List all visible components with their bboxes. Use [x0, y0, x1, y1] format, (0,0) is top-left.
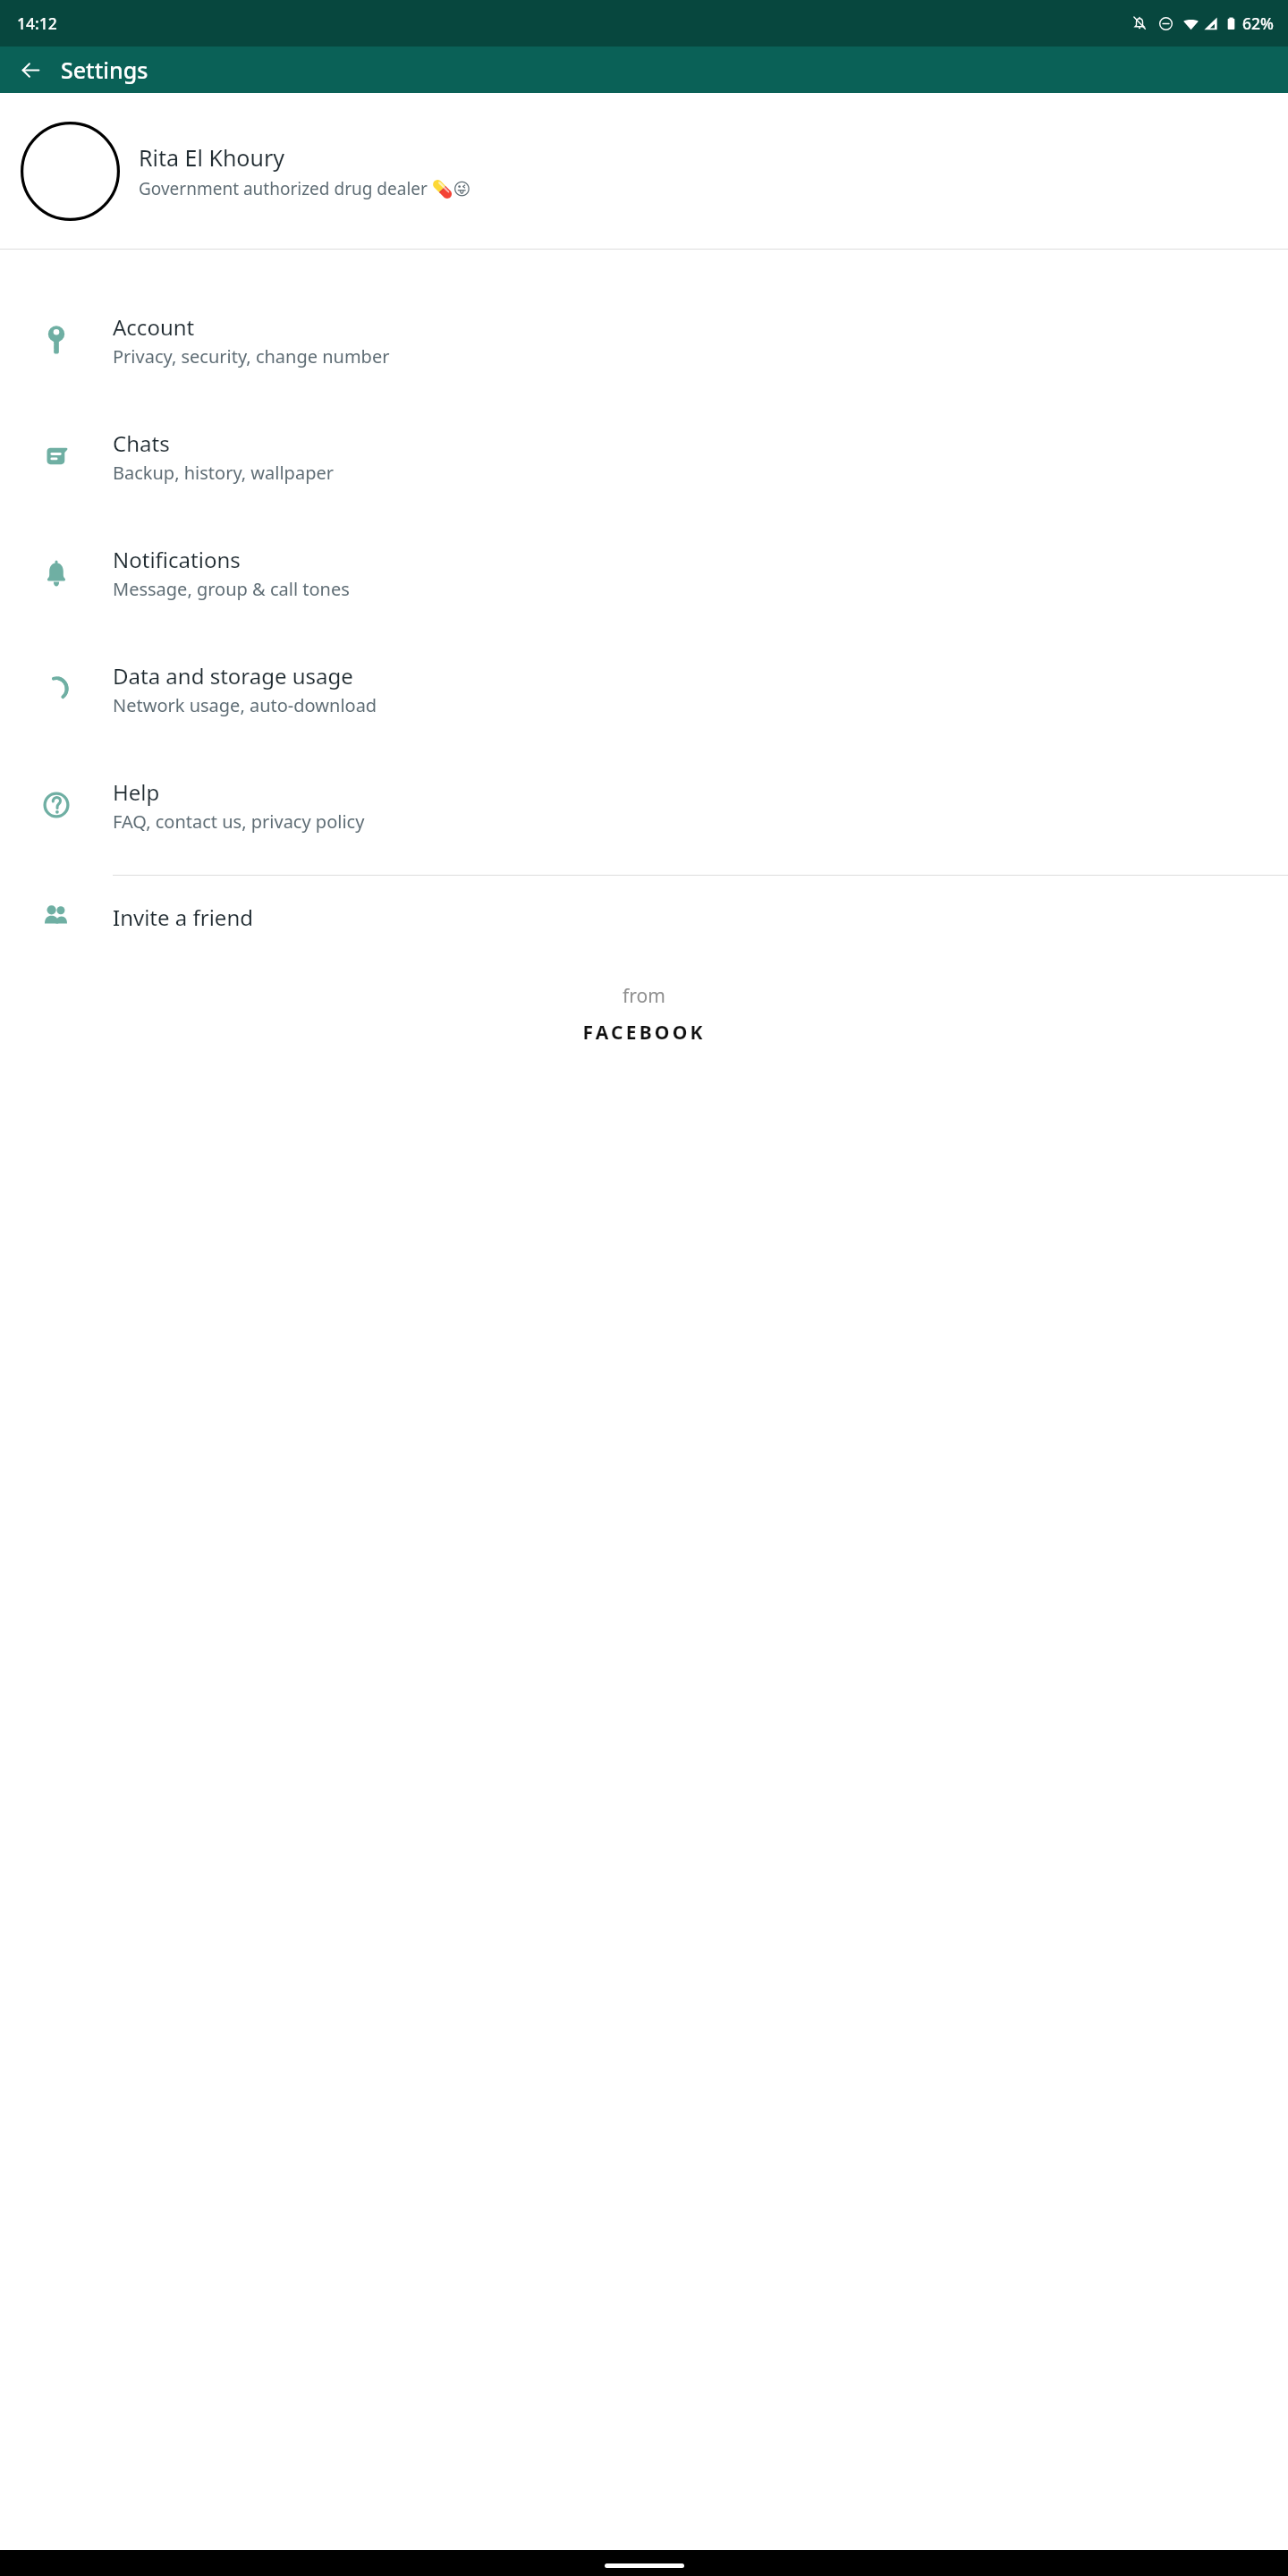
staticText: Backup, history, wallpaper	[113, 461, 334, 485]
button[interactable]: Data and storage usage	[0, 631, 1288, 747]
button[interactable]: Notifications	[0, 514, 1288, 631]
staticText: Chats	[113, 428, 170, 458]
staticText: FAQ, contact us, privacy policy	[113, 809, 365, 834]
button[interactable]: Invite a friend	[0, 876, 1288, 958]
button[interactable]: Help	[0, 747, 1288, 863]
staticText: 14:12	[17, 13, 57, 34]
staticText: Help	[113, 777, 160, 807]
staticText: Settings	[61, 55, 148, 85]
button[interactable]: Account	[0, 282, 1288, 398]
staticText: 62%	[1242, 13, 1274, 34]
staticText: Data and storage usage	[113, 661, 353, 691]
button[interactable]: Rita El Khoury	[0, 93, 1288, 249]
staticText: Network usage, auto-download	[113, 693, 377, 717]
staticText: from	[623, 983, 665, 1009]
staticText: Invite a friend	[113, 902, 253, 932]
staticText: Privacy, security, change number	[113, 344, 390, 369]
staticText: Rita El Khoury	[139, 142, 284, 173]
button[interactable]: Chats	[0, 398, 1288, 514]
button[interactable]: Back	[9, 48, 52, 91]
staticText: Government authorized drug dealer 💊😜	[139, 177, 471, 200]
staticText: Notifications	[113, 545, 241, 574]
staticText: FACEBOOK	[582, 1020, 706, 1046]
staticText: Account	[113, 312, 195, 342]
staticText: Message, group & call tones	[113, 577, 350, 601]
